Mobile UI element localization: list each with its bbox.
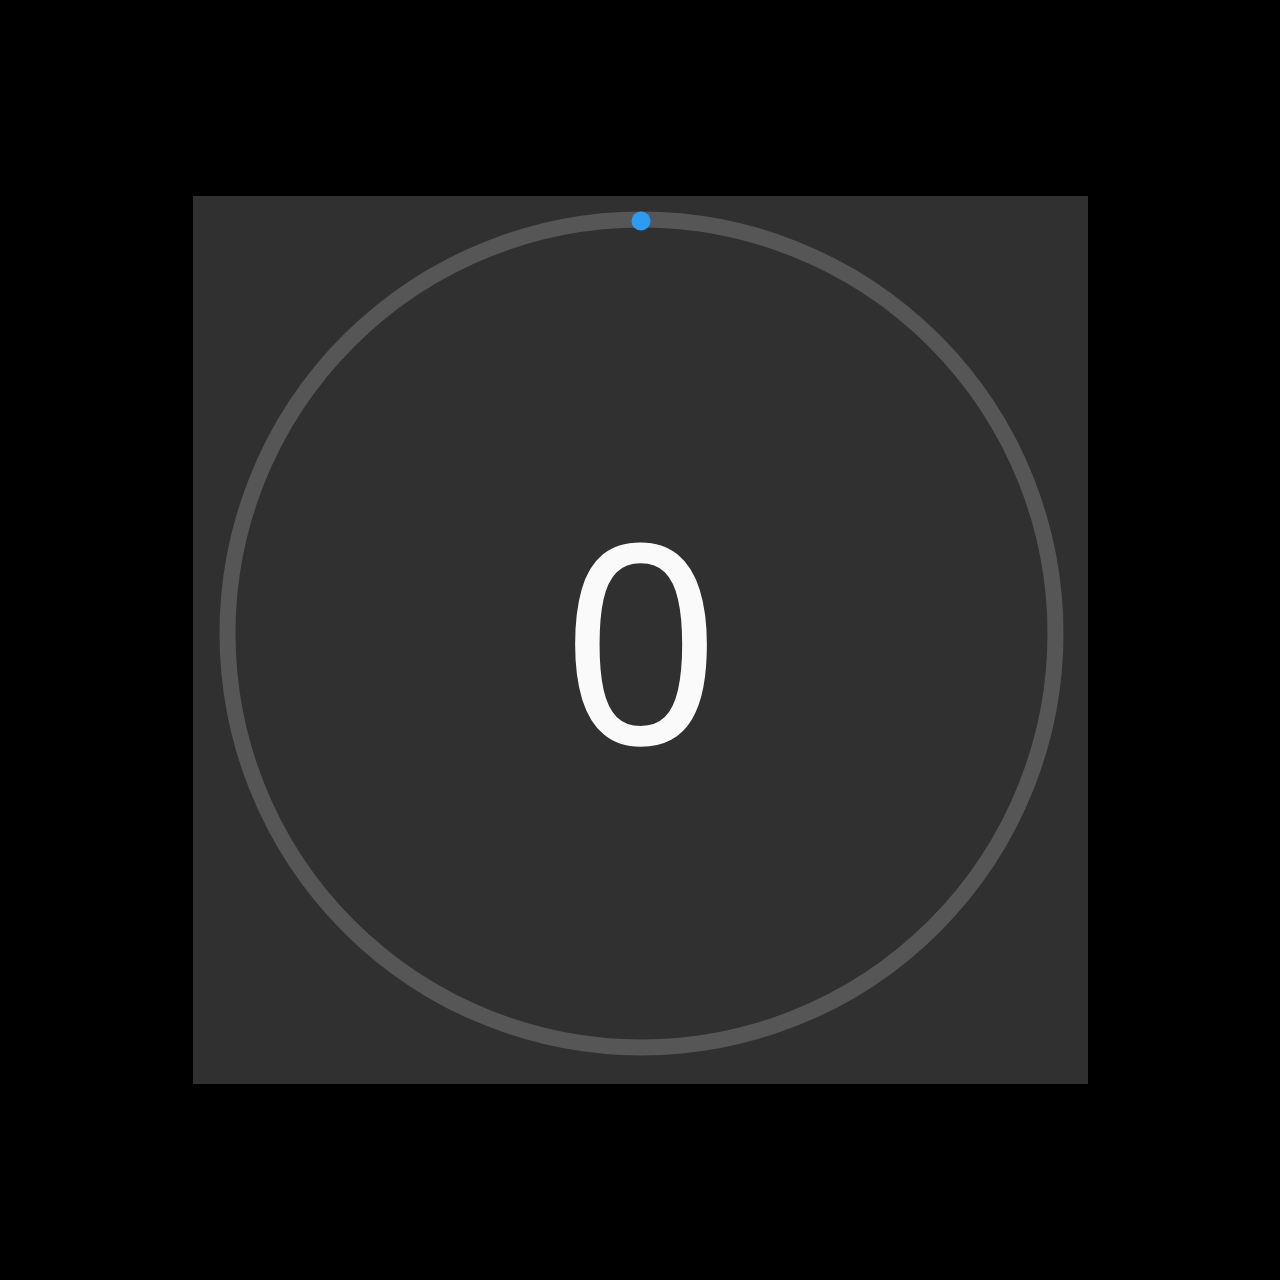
staticText: 0 (561, 447, 721, 826)
button[interactable]: Counter, tap to increment (193, 196, 1088, 1084)
